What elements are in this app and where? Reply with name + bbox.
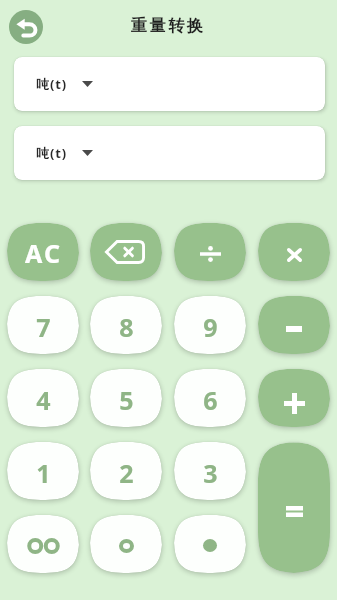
- staticText: 重量转换: [131, 16, 206, 36]
- button[interactable]: 吨(t): [14, 126, 325, 180]
- button[interactable]: All clear: [7, 223, 79, 281]
- button[interactable]: Zero: [90, 515, 162, 573]
- staticText: 吨(t): [36, 144, 68, 162]
- button[interactable]: 5: [90, 369, 162, 427]
- staticText: 7: [36, 310, 51, 344]
- button[interactable]: Double zero: [7, 515, 79, 573]
- button[interactable]: Minus: [258, 296, 330, 354]
- staticText: AC: [25, 236, 62, 270]
- staticText: 4: [36, 383, 51, 417]
- button[interactable]: 3: [174, 442, 246, 500]
- button[interactable]: Back: [9, 10, 43, 44]
- staticText: 1: [36, 456, 51, 490]
- button[interactable]: 6: [174, 369, 246, 427]
- button[interactable]: Backspace: [90, 223, 162, 281]
- button[interactable]: 4: [7, 369, 79, 427]
- button[interactable]: Decimal point: [174, 515, 246, 573]
- staticText: 9: [203, 310, 218, 344]
- button[interactable]: 7: [7, 296, 79, 354]
- button[interactable]: Multiply: [258, 223, 330, 281]
- button[interactable]: 1: [7, 442, 79, 500]
- button[interactable]: Divide: [174, 223, 246, 281]
- button[interactable]: 9: [174, 296, 246, 354]
- staticText: 5: [119, 383, 134, 417]
- button[interactable]: 8: [90, 296, 162, 354]
- staticText: 8: [119, 310, 134, 344]
- staticText: 2: [119, 456, 134, 490]
- button[interactable]: 2: [90, 442, 162, 500]
- button[interactable]: Equals: [258, 442, 330, 573]
- button[interactable]: Plus: [258, 369, 330, 427]
- staticText: 6: [203, 383, 218, 417]
- staticText: 吨(t): [36, 75, 68, 93]
- button[interactable]: 吨(t): [14, 57, 325, 111]
- staticText: 3: [203, 456, 218, 490]
